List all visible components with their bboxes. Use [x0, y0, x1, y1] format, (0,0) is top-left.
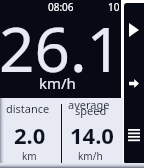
staticText: average — [68, 97, 110, 112]
staticText: km/h — [78, 149, 103, 163]
staticText: km — [22, 149, 37, 163]
staticText: km/h — [39, 73, 76, 93]
button[interactable]: Next screen — [124, 73, 144, 93]
staticText: distance — [6, 101, 50, 116]
staticText: speed — [75, 103, 107, 118]
staticText: 10 — [108, 0, 120, 14]
button[interactable]: Start — [124, 20, 144, 40]
button[interactable] — [0, 98, 60, 168]
button[interactable] — [61, 98, 123, 168]
staticText: 14.0 — [70, 120, 114, 150]
staticText: 26.1 — [0, 6, 123, 90]
staticText: 08:06 — [48, 0, 74, 14]
button[interactable]: Menu — [124, 125, 144, 145]
staticText: 2.0 — [14, 120, 46, 150]
